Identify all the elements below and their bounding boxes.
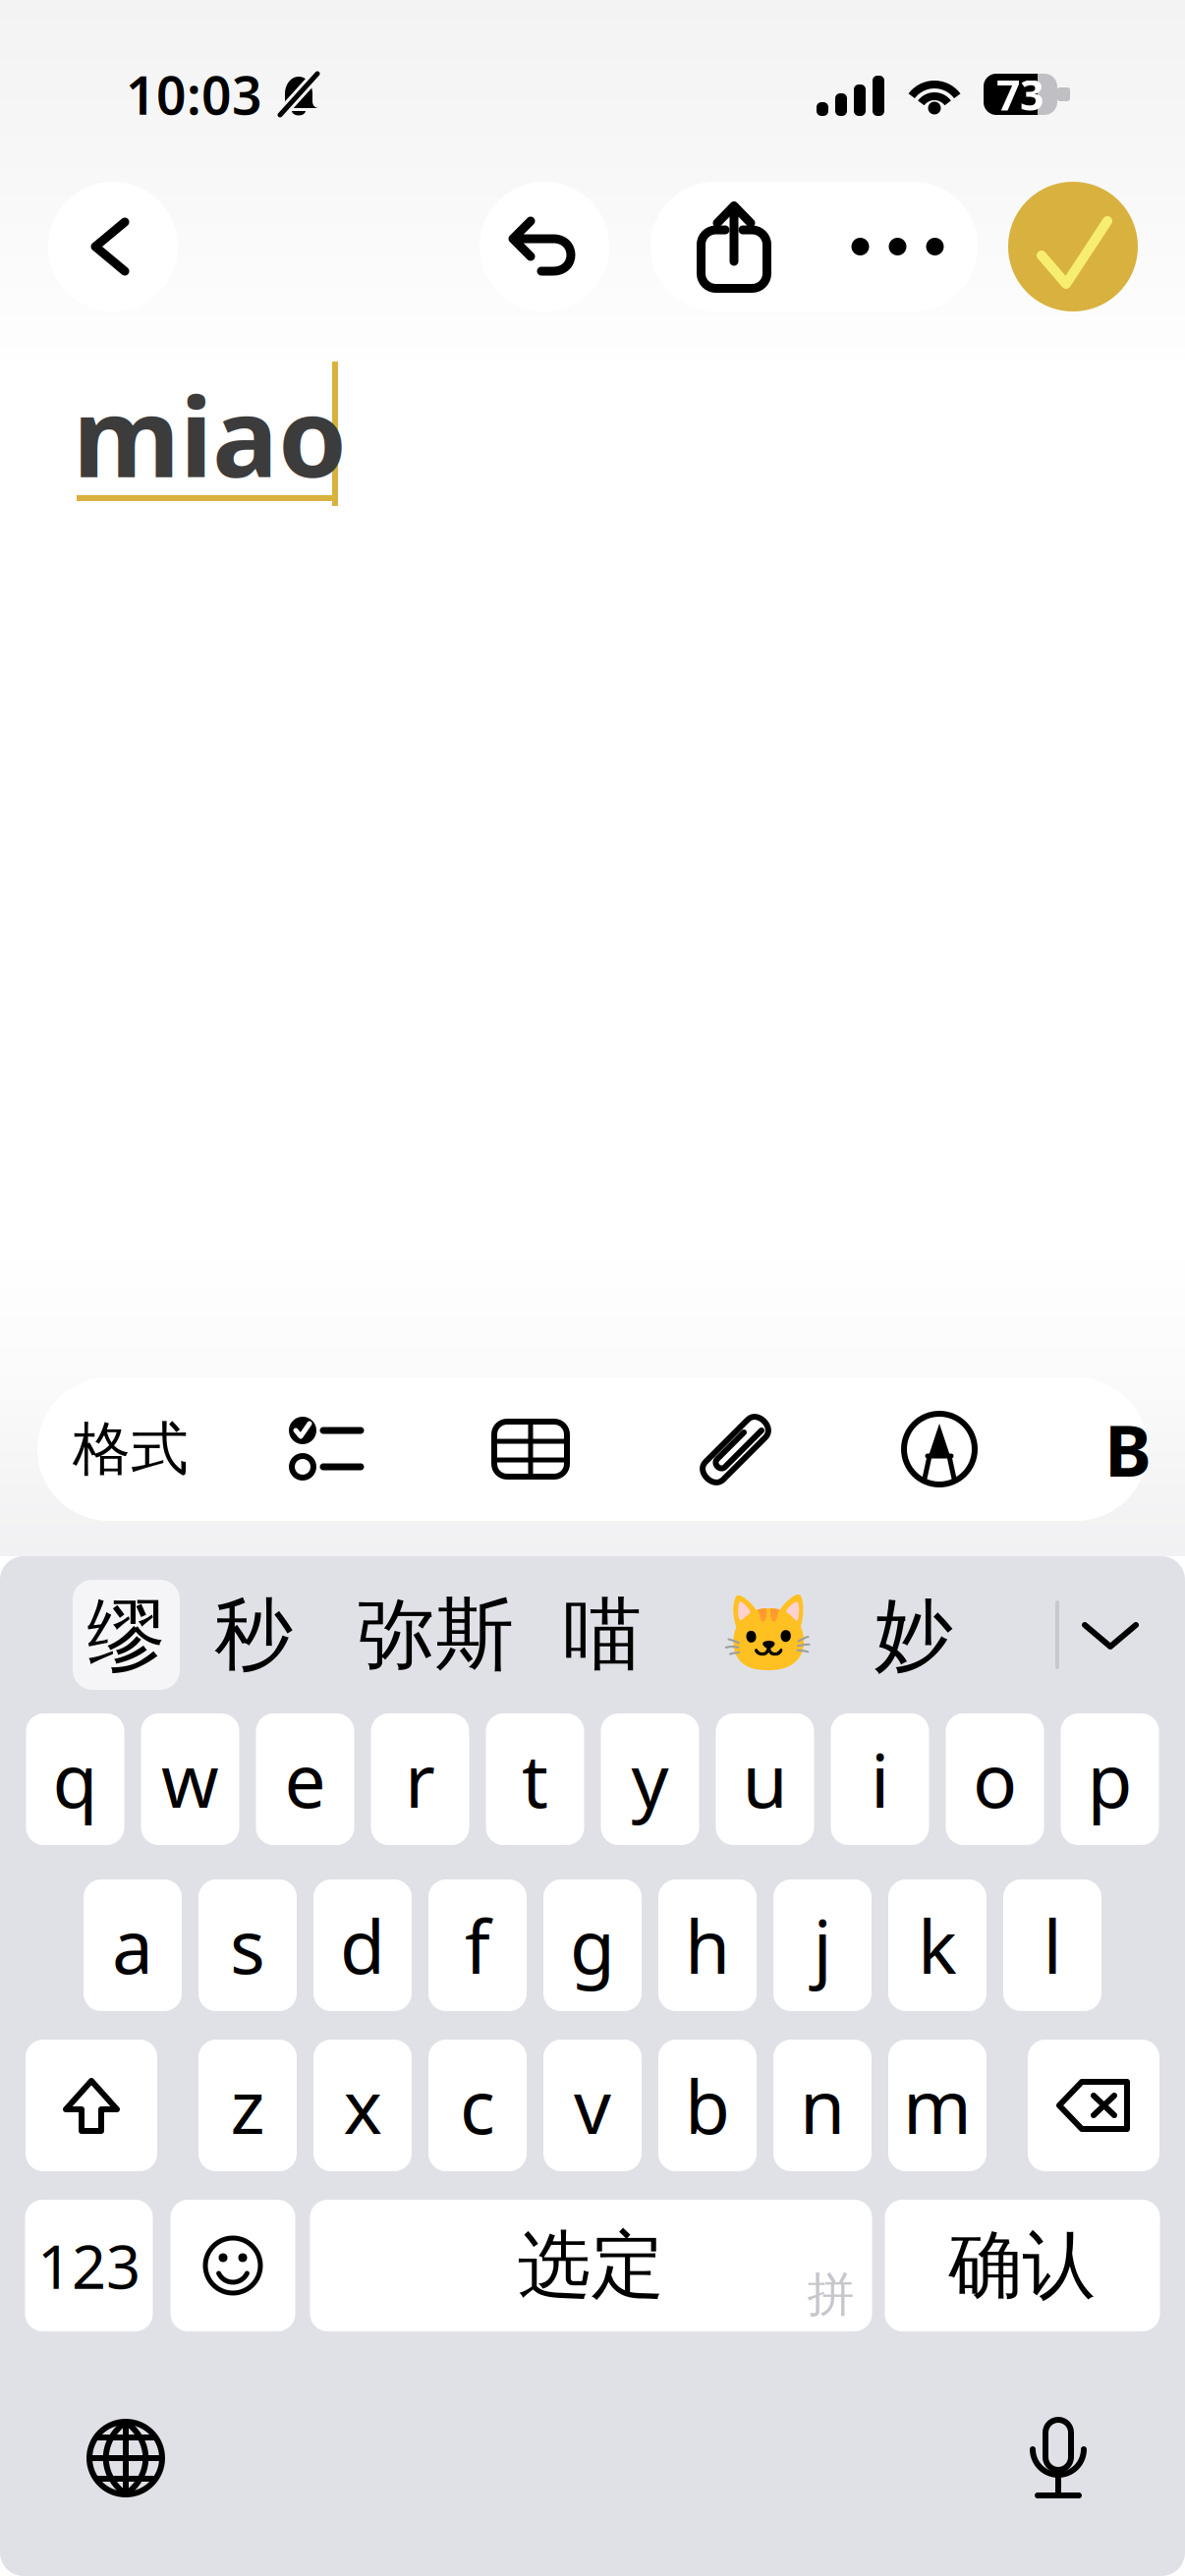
button[interactable]: t: [486, 1713, 584, 1845]
staticText: n: [800, 2057, 845, 2154]
staticText: B: [1104, 1402, 1152, 1496]
button[interactable]: x: [313, 2040, 412, 2171]
staticText: 格式: [73, 1414, 189, 1485]
staticText: j: [813, 1897, 832, 1994]
button[interactable]: o: [946, 1713, 1044, 1845]
button[interactable]: 妙: [875, 1580, 952, 1690]
staticText: e: [284, 1730, 326, 1828]
button[interactable]: n: [773, 2040, 872, 2171]
button[interactable]: j: [773, 1879, 872, 2011]
button[interactable]: c: [428, 2040, 527, 2171]
button[interactable]: m: [888, 2040, 987, 2171]
button[interactable]: 🐱: [724, 1580, 813, 1690]
staticText: z: [230, 2057, 265, 2154]
staticText: h: [685, 1897, 730, 1994]
button[interactable]: 123: [25, 2200, 153, 2331]
button[interactable]: l: [1003, 1879, 1101, 2011]
staticText: y: [631, 1730, 669, 1828]
staticText: o: [973, 1730, 1017, 1828]
button[interactable]: Done: [1008, 182, 1138, 311]
button[interactable]: Markup: [837, 1377, 1042, 1521]
button[interactable]: Share: [650, 182, 818, 311]
staticText: 确认: [949, 2220, 1096, 2311]
staticText: 🐱: [721, 1591, 816, 1678]
button[interactable]: Undo: [480, 182, 609, 311]
button[interactable]: 选定: [310, 2200, 872, 2331]
staticText: k: [918, 1897, 957, 1994]
button[interactable]: Delete: [1028, 2040, 1159, 2171]
staticText: g: [570, 1897, 615, 1994]
staticText: 73: [996, 67, 1044, 122]
staticText: c: [460, 2057, 495, 2154]
staticText: 秒: [214, 1587, 293, 1683]
staticText: 选定: [517, 2220, 665, 2311]
staticText: w: [161, 1730, 219, 1828]
staticText: x: [343, 2057, 382, 2154]
staticText: b: [685, 2057, 730, 2154]
button[interactable]: v: [543, 2040, 642, 2171]
button[interactable]: Back: [48, 182, 178, 311]
button[interactable]: 喵: [563, 1580, 642, 1690]
button[interactable]: Expand candidates: [1059, 1580, 1161, 1690]
staticText: 妙: [875, 1587, 953, 1683]
staticText: p: [1087, 1730, 1132, 1828]
button[interactable]: i: [831, 1713, 929, 1845]
button[interactable]: 弥斯: [357, 1580, 514, 1690]
button[interactable]: Table: [428, 1377, 633, 1521]
staticText: 10:03: [126, 60, 262, 129]
button[interactable]: 确认: [885, 2200, 1160, 2331]
button[interactable]: e: [256, 1713, 354, 1845]
button[interactable]: 格式: [37, 1377, 224, 1521]
staticText: 123: [37, 2226, 141, 2306]
button[interactable]: g: [543, 1879, 642, 2011]
button[interactable]: Shift: [26, 2040, 157, 2171]
staticText: r: [405, 1730, 435, 1828]
staticText: a: [112, 1897, 153, 1994]
button[interactable]: u: [716, 1713, 814, 1845]
button[interactable]: y: [601, 1713, 699, 1845]
button[interactable]: 秒: [217, 1580, 290, 1690]
staticText: t: [522, 1730, 548, 1828]
button[interactable]: p: [1061, 1713, 1159, 1845]
staticText: l: [1043, 1897, 1062, 1994]
button[interactable]: Emoji: [170, 2200, 295, 2331]
staticText: i: [871, 1730, 889, 1828]
button[interactable]: b: [658, 2040, 757, 2171]
button[interactable]: w: [141, 1713, 239, 1845]
button[interactable]: Attach: [633, 1377, 837, 1521]
staticText: v: [574, 2057, 611, 2154]
button[interactable]: a: [84, 1879, 182, 2011]
button[interactable]: k: [888, 1879, 987, 2011]
button[interactable]: d: [313, 1879, 412, 2011]
staticText: m: [903, 2057, 972, 2154]
button[interactable]: Checklist: [224, 1377, 428, 1521]
staticText: miao: [73, 362, 347, 508]
button[interactable]: f: [428, 1879, 527, 2011]
staticText: 缪: [87, 1587, 166, 1683]
staticText: 拼: [807, 2266, 854, 2324]
button[interactable]: More: [818, 182, 978, 311]
button[interactable]: Dictate: [1030, 2414, 1087, 2502]
staticText: 弥斯: [357, 1587, 514, 1683]
button[interactable]: q: [26, 1713, 124, 1845]
button[interactable]: r: [371, 1713, 469, 1845]
button[interactable]: h: [658, 1879, 757, 2011]
button[interactable]: Switch keyboard: [86, 2419, 165, 2497]
staticText: u: [742, 1730, 788, 1828]
button[interactable]: 缪: [73, 1580, 180, 1690]
button[interactable]: s: [198, 1879, 297, 2011]
staticText: f: [465, 1897, 490, 1994]
staticText: d: [340, 1897, 385, 1994]
staticText: s: [230, 1897, 265, 1994]
staticText: q: [53, 1730, 98, 1828]
button[interactable]: z: [198, 2040, 297, 2171]
staticText: 喵: [563, 1587, 642, 1683]
